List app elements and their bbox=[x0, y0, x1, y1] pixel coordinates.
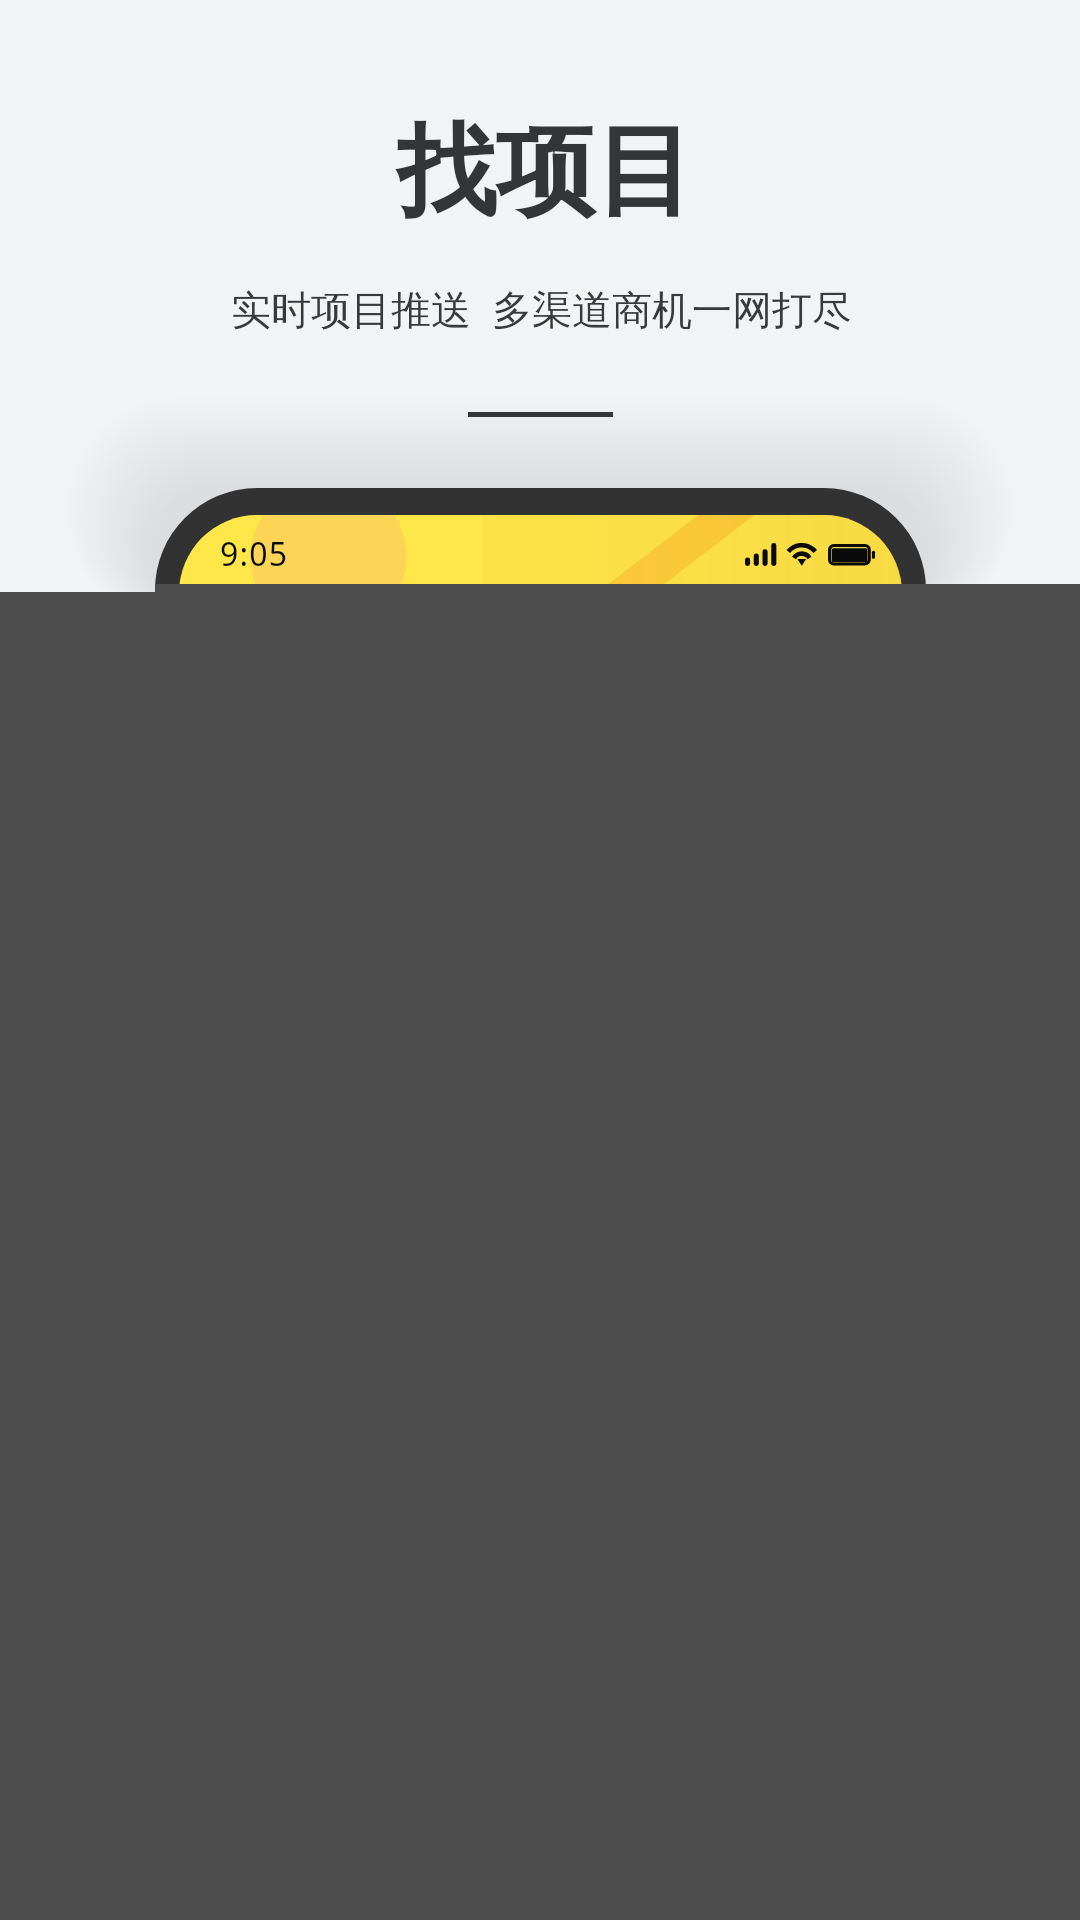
staticText: 找项目 bbox=[397, 110, 694, 235]
other: Battery full bbox=[828, 544, 875, 566]
staticText: 实时项目推送 多渠道商机一网打尽 bbox=[231, 281, 852, 336]
other: Cellular signal bbox=[745, 543, 777, 566]
staticText: 9:05 bbox=[220, 532, 289, 576]
other: Wi-Fi bbox=[786, 543, 818, 566]
